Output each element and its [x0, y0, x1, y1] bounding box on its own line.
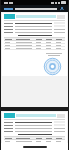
button[interactable] [2, 13, 67, 76]
button[interactable]: Home [23, 146, 47, 148]
button[interactable]: Share [59, 6, 65, 12]
button[interactable] [2, 112, 67, 143]
